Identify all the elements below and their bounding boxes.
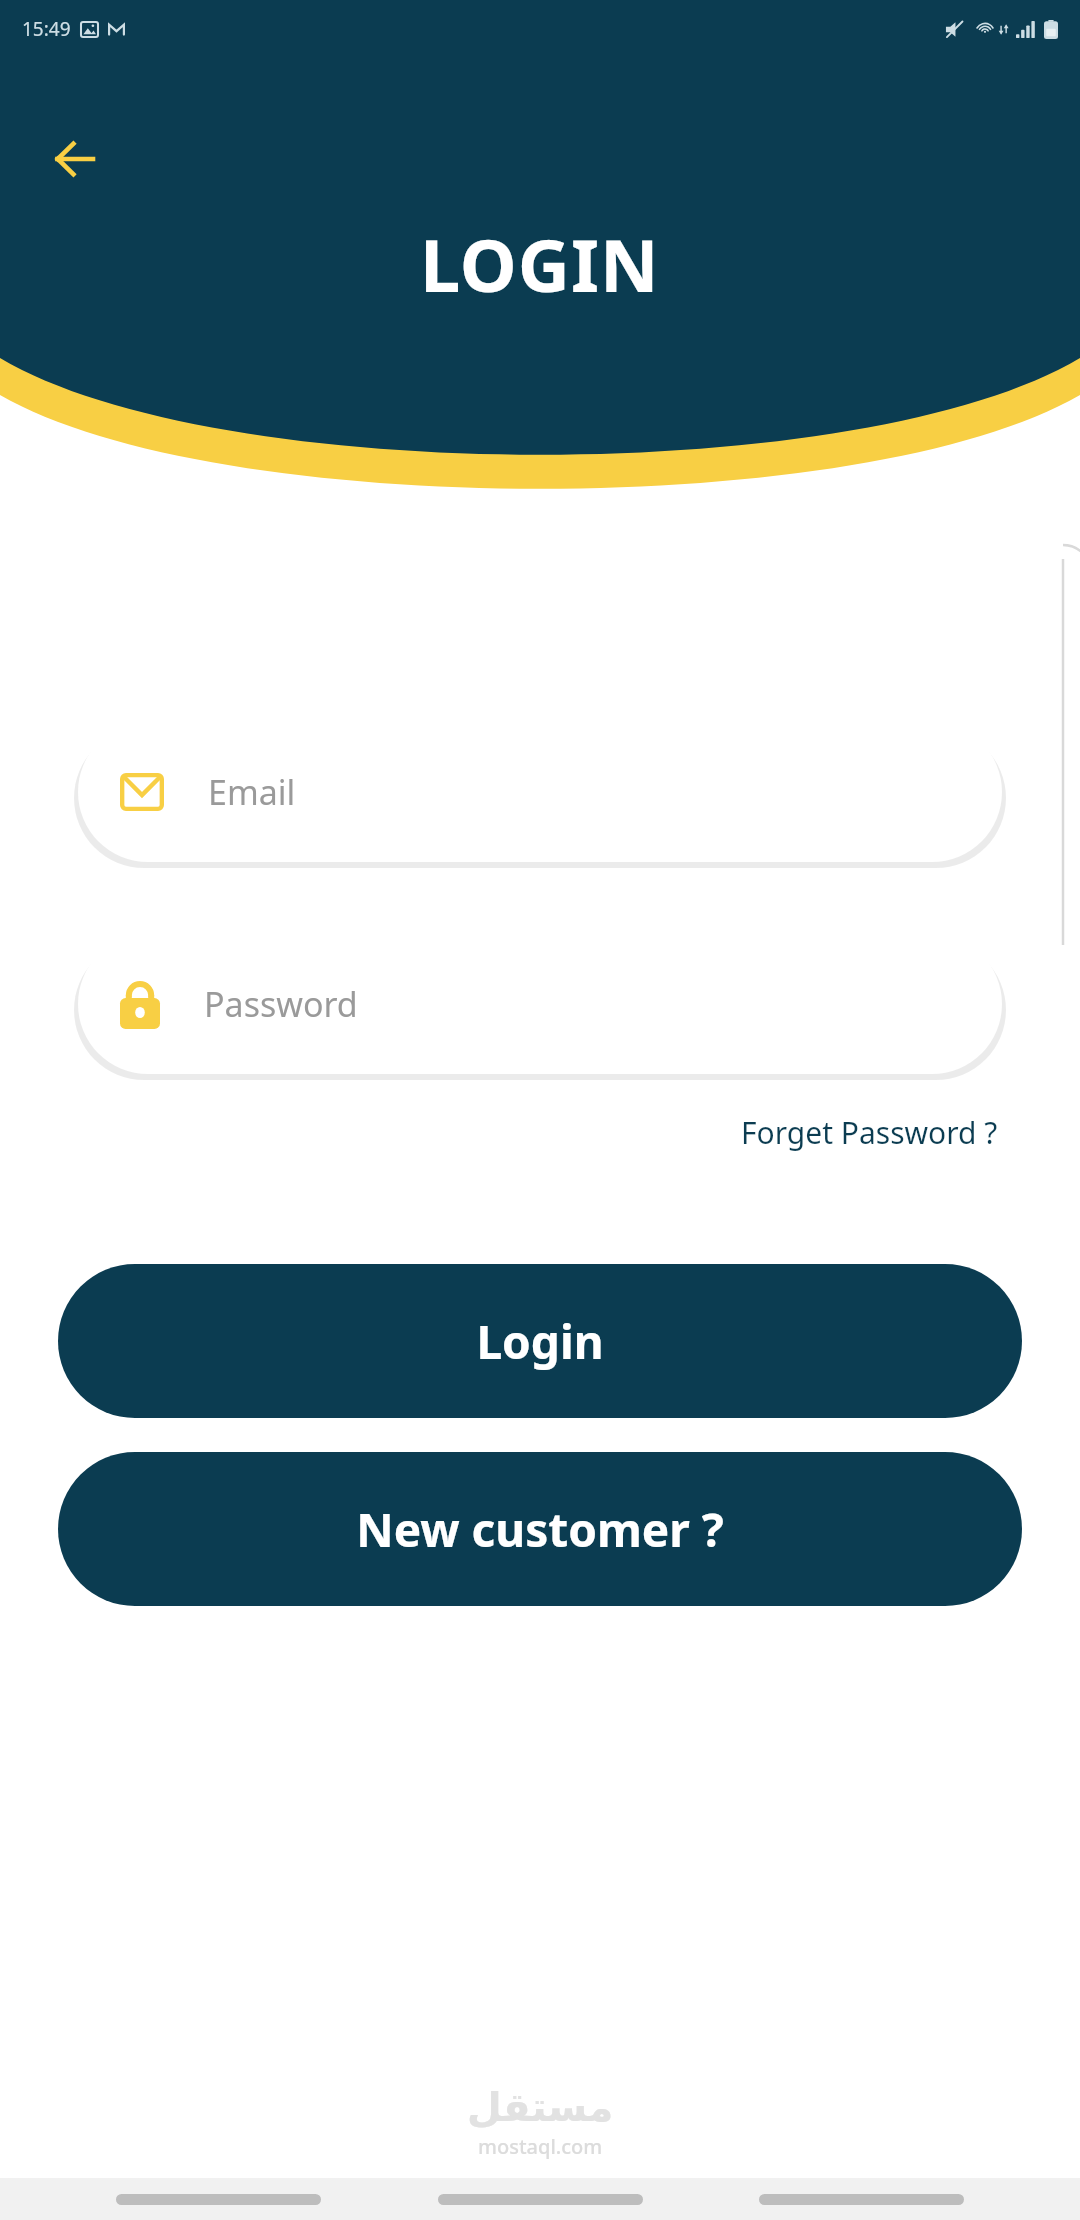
button[interactable]: Password [78,934,1002,1074]
staticText: New customer ? [356,1498,724,1561]
staticText: Email [208,769,296,815]
staticText: Password [204,981,358,1027]
staticText: 15:49 [22,16,71,42]
button[interactable]: Login [58,1264,1022,1418]
button[interactable]: Back [44,128,106,190]
staticText: Forget Password ? [741,1112,998,1153]
button[interactable]: Navigation [759,2194,964,2205]
staticText: مستقل [467,2084,614,2131]
button[interactable]: Navigation [116,2194,321,2205]
staticText: LOGIN [420,215,660,313]
button[interactable]: Email [78,722,1002,862]
button[interactable]: Forget Password ? [737,1106,1002,1159]
button[interactable]: Navigation [438,2194,643,2205]
staticText: mostaql.com [478,2133,603,2160]
button[interactable]: New customer ? [58,1452,1022,1606]
staticText: Login [476,1310,604,1373]
